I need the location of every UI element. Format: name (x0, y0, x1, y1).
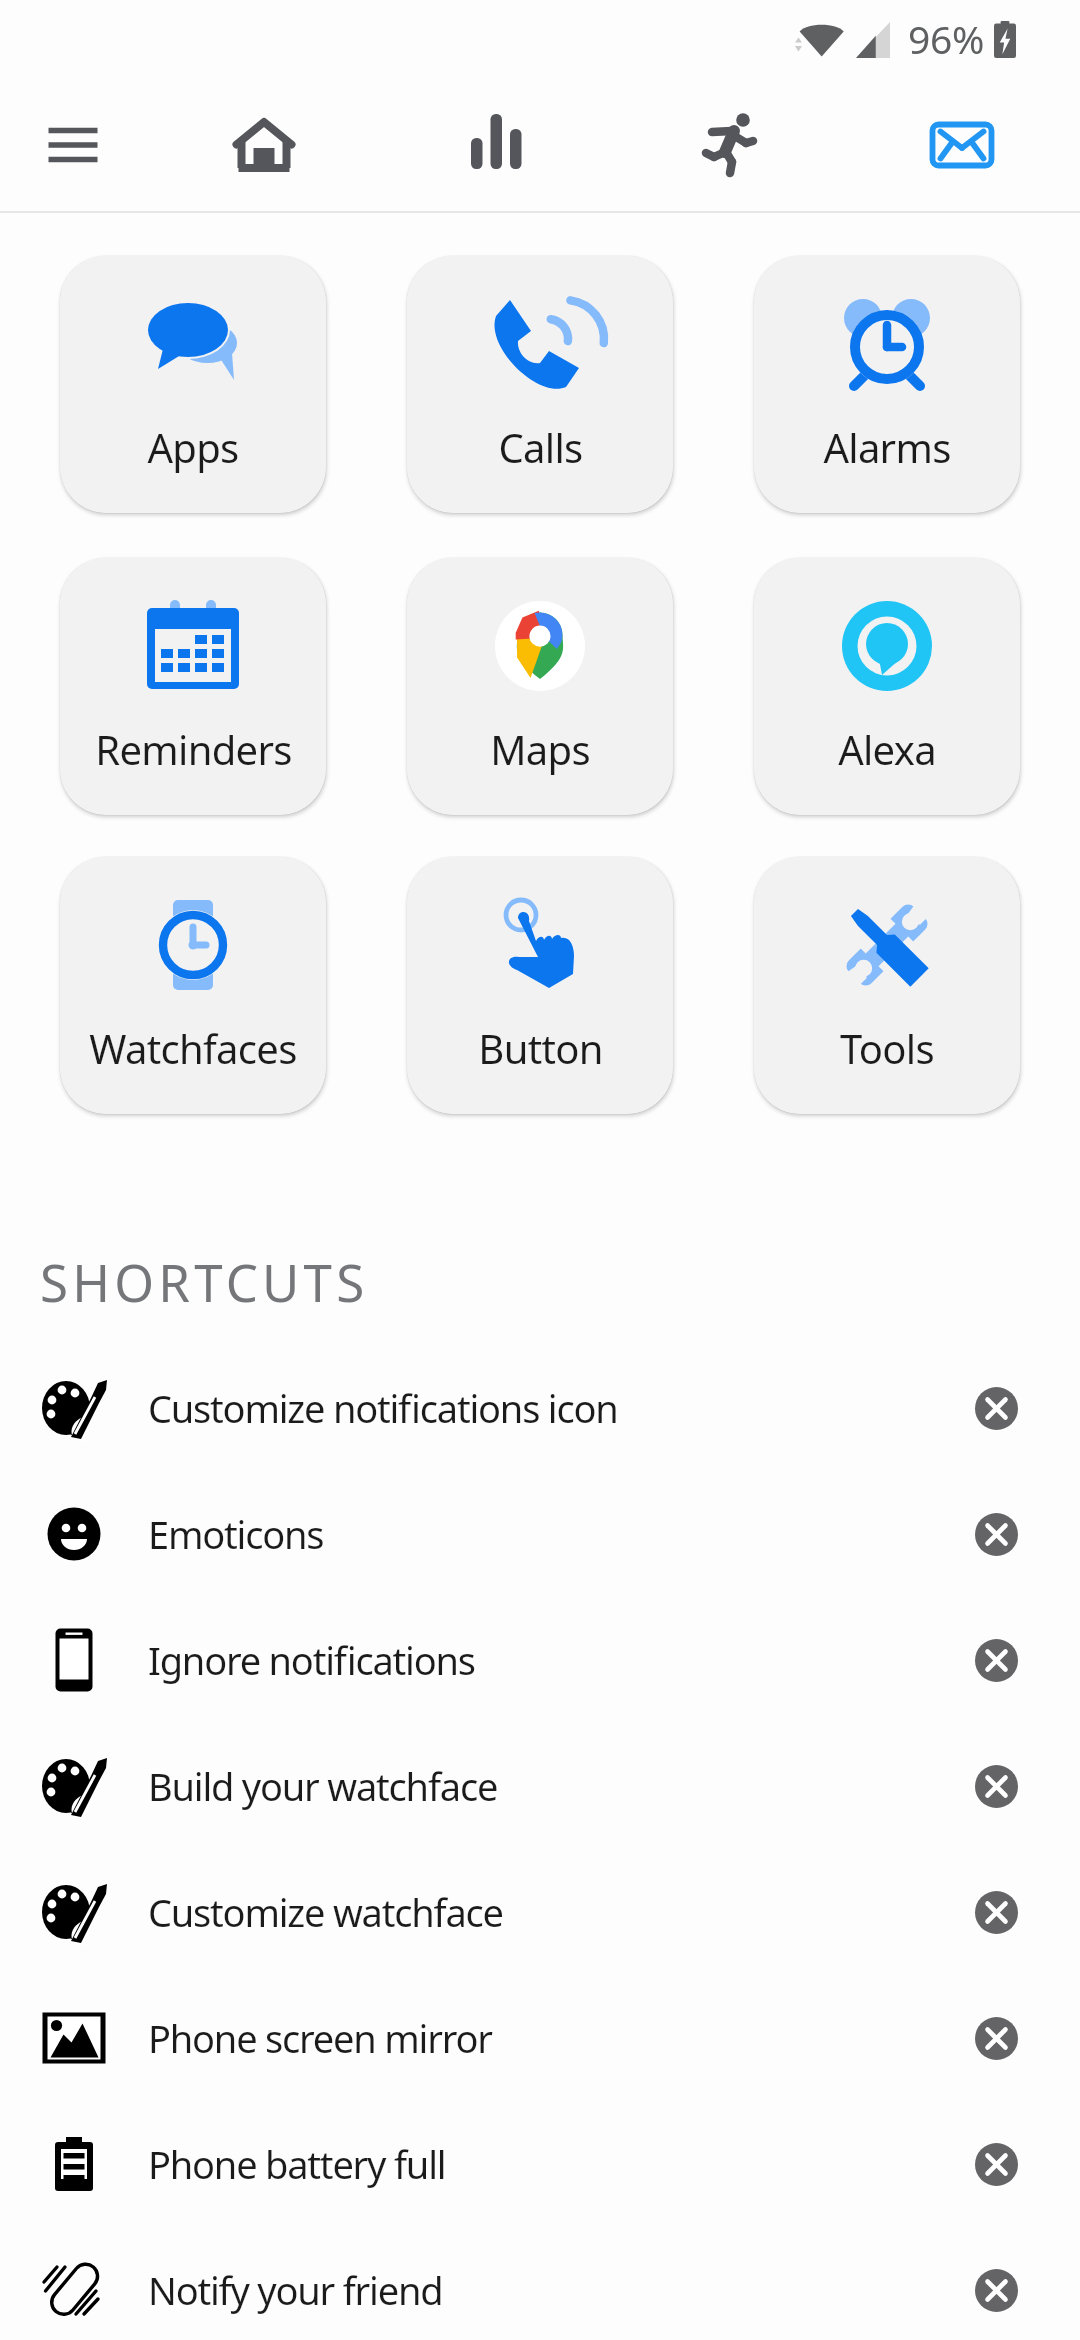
button[interactable]: Menu (13, 85, 133, 205)
button[interactable]: Alexa (754, 558, 1020, 815)
button[interactable]: Remove Emoticons (954, 1492, 1038, 1576)
button[interactable]: Customize watchface (0, 1849, 1080, 1975)
button[interactable]: Watchfaces (60, 857, 326, 1114)
staticText: Watchfaces (89, 1021, 297, 1075)
staticText: Ignore notifications (148, 1634, 475, 1686)
button[interactable]: Emoticons (0, 1471, 1080, 1597)
button[interactable]: Ignore notifications (0, 1597, 1080, 1723)
staticText: Alarms (823, 420, 951, 474)
button[interactable]: Maps (407, 558, 673, 815)
button[interactable]: Activity (669, 85, 789, 205)
staticText: Phone screen mirror (148, 2012, 492, 2064)
staticText: Customize notifications icon (148, 1382, 618, 1434)
button[interactable]: Remove Notify your friend (954, 2248, 1038, 2332)
button[interactable]: Customize notifications icon (0, 1345, 1080, 1471)
button[interactable]: Messages (902, 85, 1022, 205)
staticText: Tools (840, 1021, 934, 1075)
button[interactable]: Reminders (60, 558, 326, 815)
button[interactable]: Remove Phone battery full (954, 2122, 1038, 2206)
button[interactable]: Remove Customize notifications icon (954, 1366, 1038, 1450)
button[interactable]: Remove Build your watchface (954, 1744, 1038, 1828)
button[interactable]: Phone battery full (0, 2101, 1080, 2227)
button[interactable]: Build your watchface (0, 1723, 1080, 1849)
button[interactable]: Statistics (436, 85, 556, 205)
staticText: Maps (490, 722, 590, 776)
button[interactable]: Tools (754, 857, 1020, 1114)
staticText: Button (478, 1021, 603, 1075)
staticText: SHORTCUTS (40, 1247, 369, 1316)
staticText: Customize watchface (148, 1886, 503, 1938)
button[interactable]: Button (407, 857, 673, 1114)
staticText: Phone battery full (148, 2138, 446, 2190)
staticText: Reminders (95, 722, 292, 776)
button[interactable]: Home (204, 85, 324, 205)
button[interactable]: Remove Customize watchface (954, 1870, 1038, 1954)
button[interactable]: Alarms (754, 256, 1020, 513)
button[interactable]: Notify your friend (0, 2227, 1080, 2340)
button[interactable]: Remove Ignore notifications (954, 1618, 1038, 1702)
staticText: Apps (147, 420, 239, 474)
button[interactable]: Phone screen mirror (0, 1975, 1080, 2101)
button[interactable]: Remove Phone screen mirror (954, 1996, 1038, 2080)
staticText: Emoticons (148, 1508, 324, 1560)
staticText: Calls (498, 420, 583, 474)
staticText: Notify your friend (148, 2264, 443, 2316)
staticText: 96% (908, 12, 985, 65)
button[interactable]: Calls (407, 256, 673, 513)
button[interactable]: Apps (60, 256, 326, 513)
staticText: Alexa (838, 722, 936, 776)
staticText: Build your watchface (148, 1760, 498, 1812)
